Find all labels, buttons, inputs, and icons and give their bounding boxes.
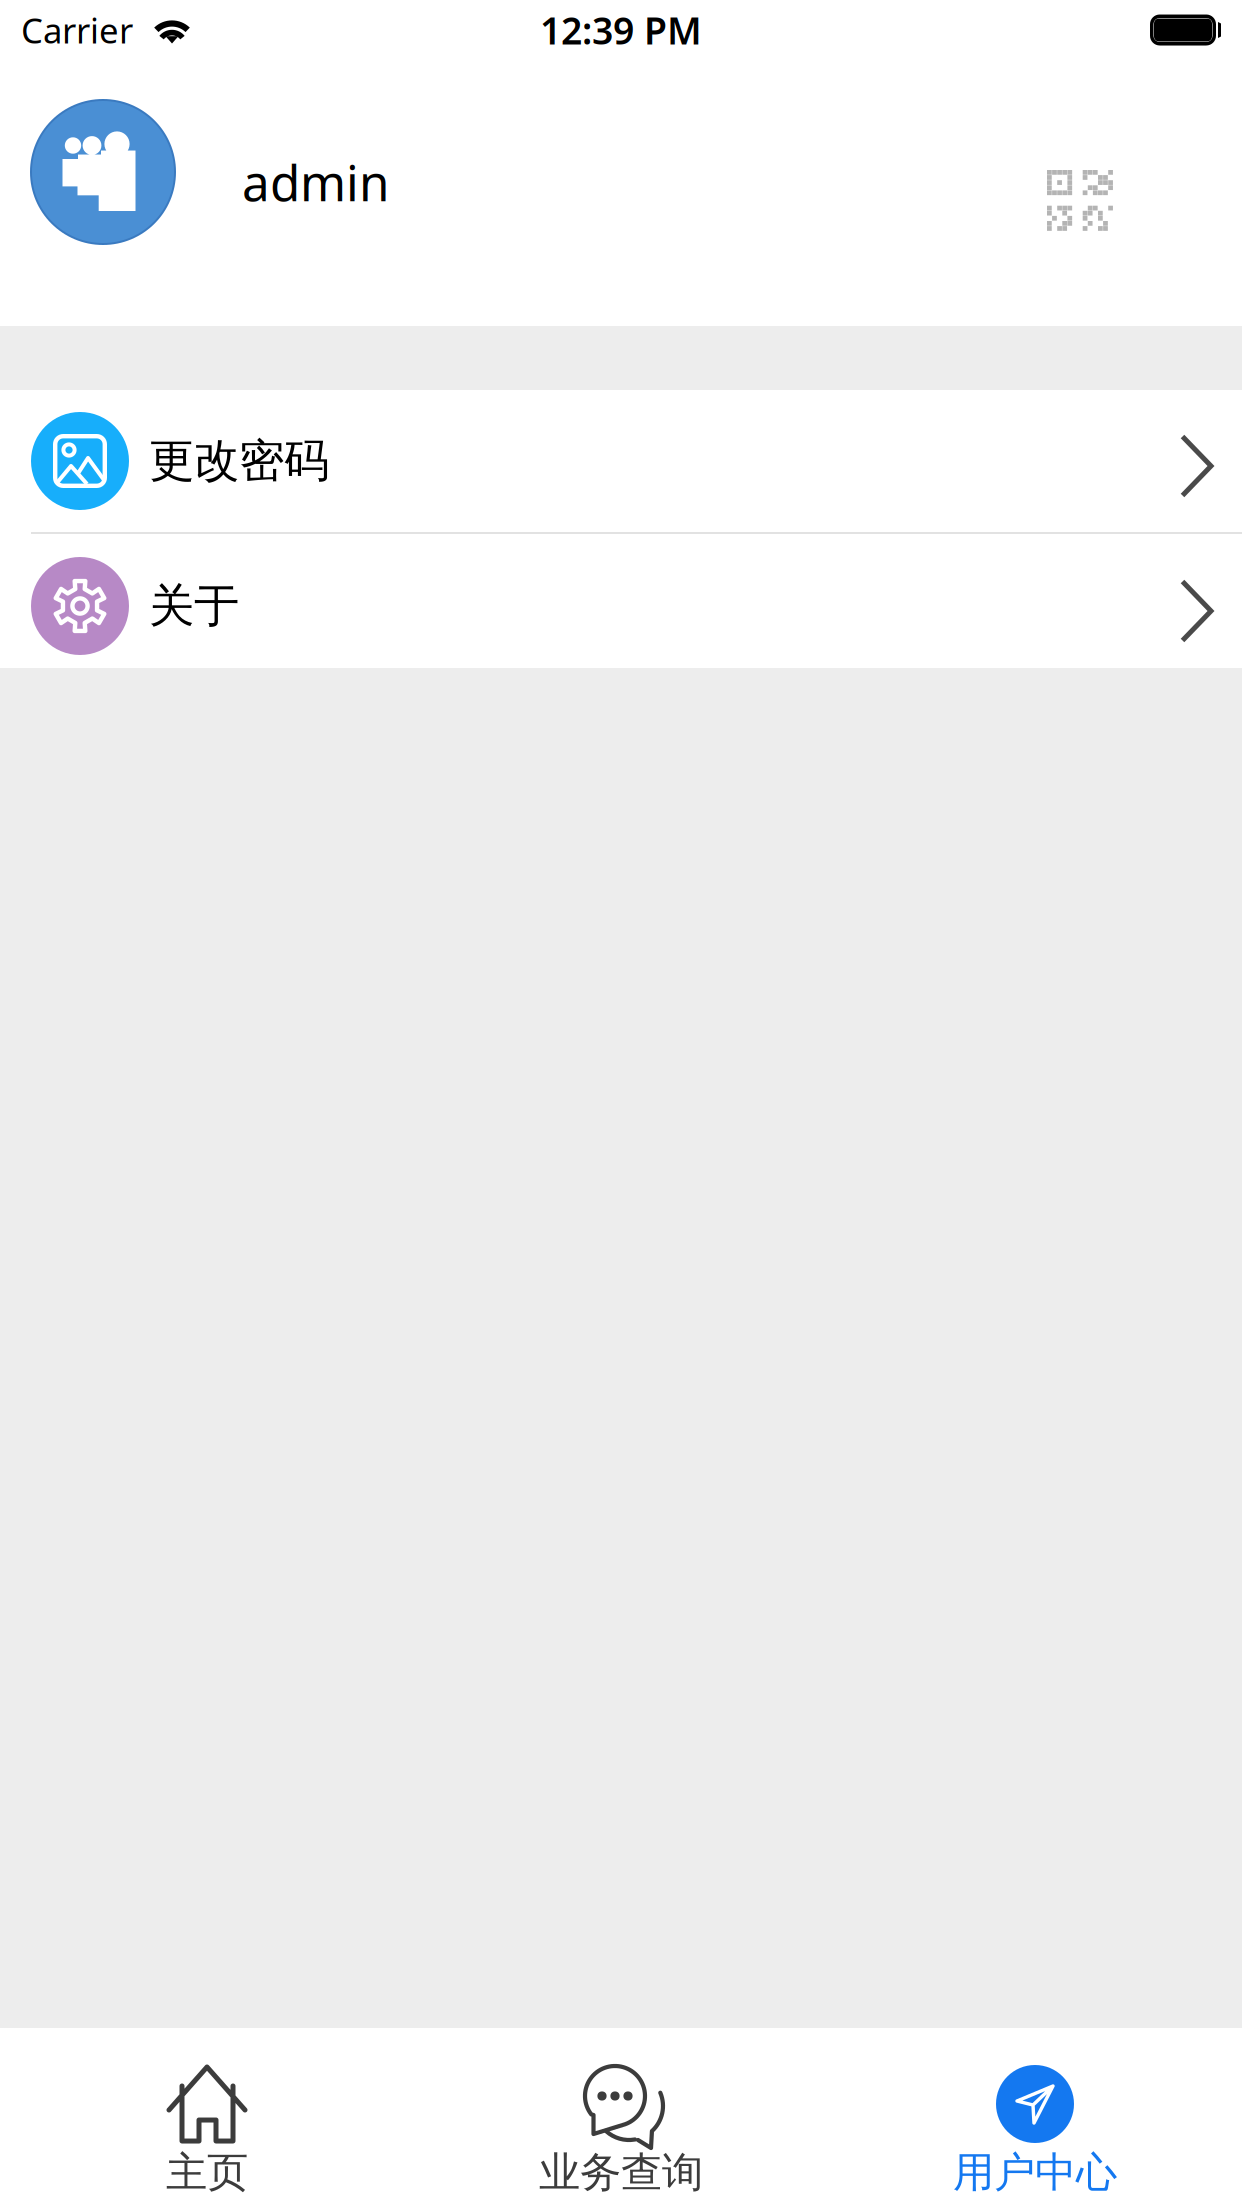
staticText: admin (242, 149, 389, 215)
button[interactable]: 主页 (0, 2028, 414, 2208)
staticText: 更改密码 (149, 433, 329, 489)
button[interactable]: My QR code (1021, 148, 1140, 259)
staticText: 12:39 PM (540, 5, 702, 55)
button[interactable]: 关于 (0, 534, 1242, 668)
staticText: 业务查询 (539, 2147, 703, 2198)
staticText: 用户中心 (953, 2147, 1117, 2198)
button[interactable]: 用户中心 (828, 2028, 1242, 2208)
button[interactable]: admin (0, 99, 900, 245)
staticText: Carrier (21, 7, 133, 53)
button[interactable]: 业务查询 (414, 2028, 828, 2208)
button[interactable]: 更改密码 (0, 390, 1242, 532)
staticText: 主页 (166, 2147, 248, 2198)
staticText: 关于 (149, 578, 239, 634)
